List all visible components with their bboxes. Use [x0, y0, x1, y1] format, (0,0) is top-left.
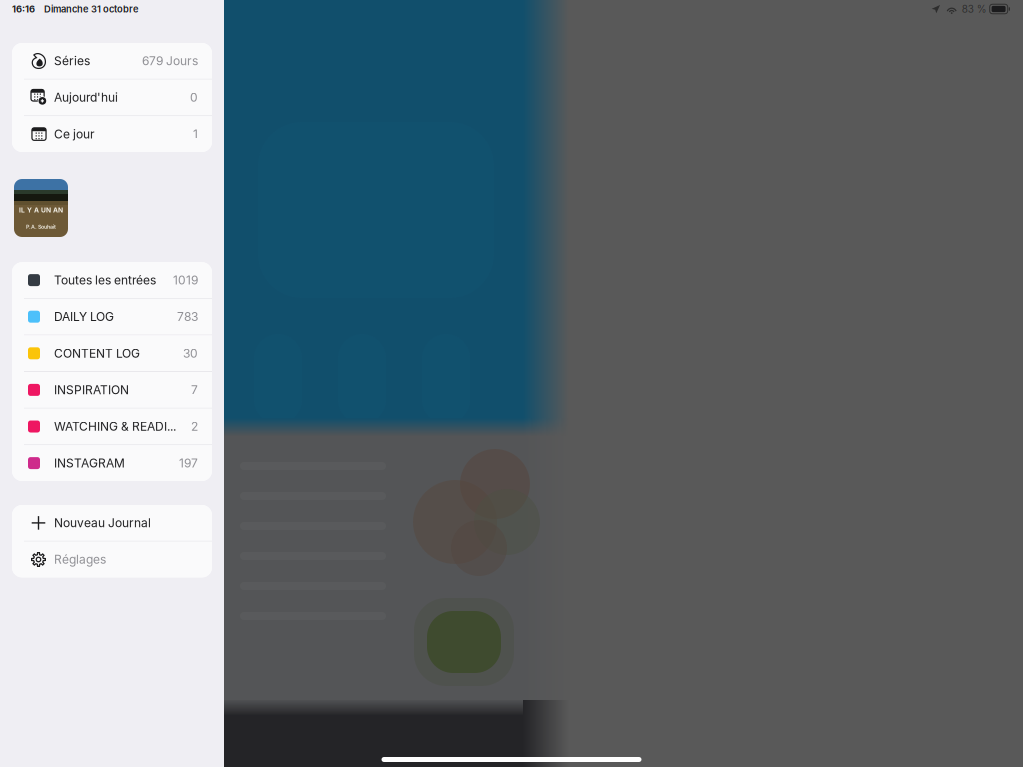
button[interactable]: DAILY LOG [12, 299, 212, 335]
staticText: Ce jour [54, 127, 95, 141]
button[interactable]: WATCHING & READI... [12, 409, 212, 444]
button[interactable]: CONTENT LOG [12, 335, 212, 371]
staticText: 679 Jours [142, 54, 198, 68]
staticText: WATCHING & READI... [54, 419, 176, 434]
staticText: INSPIRATION [54, 383, 129, 397]
staticText: 30 [183, 346, 198, 360]
staticText: Toutes les entrées [54, 273, 156, 287]
staticText: 1 [193, 127, 198, 141]
staticText: 16:16 [12, 3, 35, 15]
button[interactable]: Toutes les entrées [12, 262, 212, 298]
staticText: Dimanche 31 octobre [44, 3, 139, 15]
button[interactable]: Aujourd'hui [12, 80, 212, 115]
button[interactable]: Ce jour [12, 116, 212, 152]
staticText: DAILY LOG [54, 309, 114, 324]
staticText: CONTENT LOG [54, 346, 140, 360]
staticText: Nouveau Journal [54, 516, 151, 530]
staticText: Réglages [54, 552, 106, 567]
staticText: 7 [191, 383, 198, 397]
button[interactable]: Nouveau Journal [12, 505, 212, 541]
staticText: Séries [54, 54, 90, 68]
staticText: P.A. Souhait [26, 223, 56, 230]
staticText: 1019 [173, 273, 198, 287]
staticText: INSTAGRAM [54, 456, 125, 470]
button[interactable]: INSPIRATION [12, 372, 212, 408]
staticText: IL Y A UN AN [19, 206, 63, 214]
staticText: Aujourd'hui [54, 90, 118, 105]
staticText: 2 [191, 419, 198, 434]
button[interactable]: Réglages [12, 542, 212, 577]
staticText: 0 [190, 90, 198, 105]
button[interactable]: INSTAGRAM [12, 445, 212, 481]
staticText: 197 [179, 456, 198, 470]
button[interactable]: Souvenir, il y a un an [14, 179, 68, 237]
staticText: 83 % [962, 3, 987, 15]
staticText: 783 [177, 309, 198, 324]
button[interactable]: Séries [12, 43, 212, 79]
